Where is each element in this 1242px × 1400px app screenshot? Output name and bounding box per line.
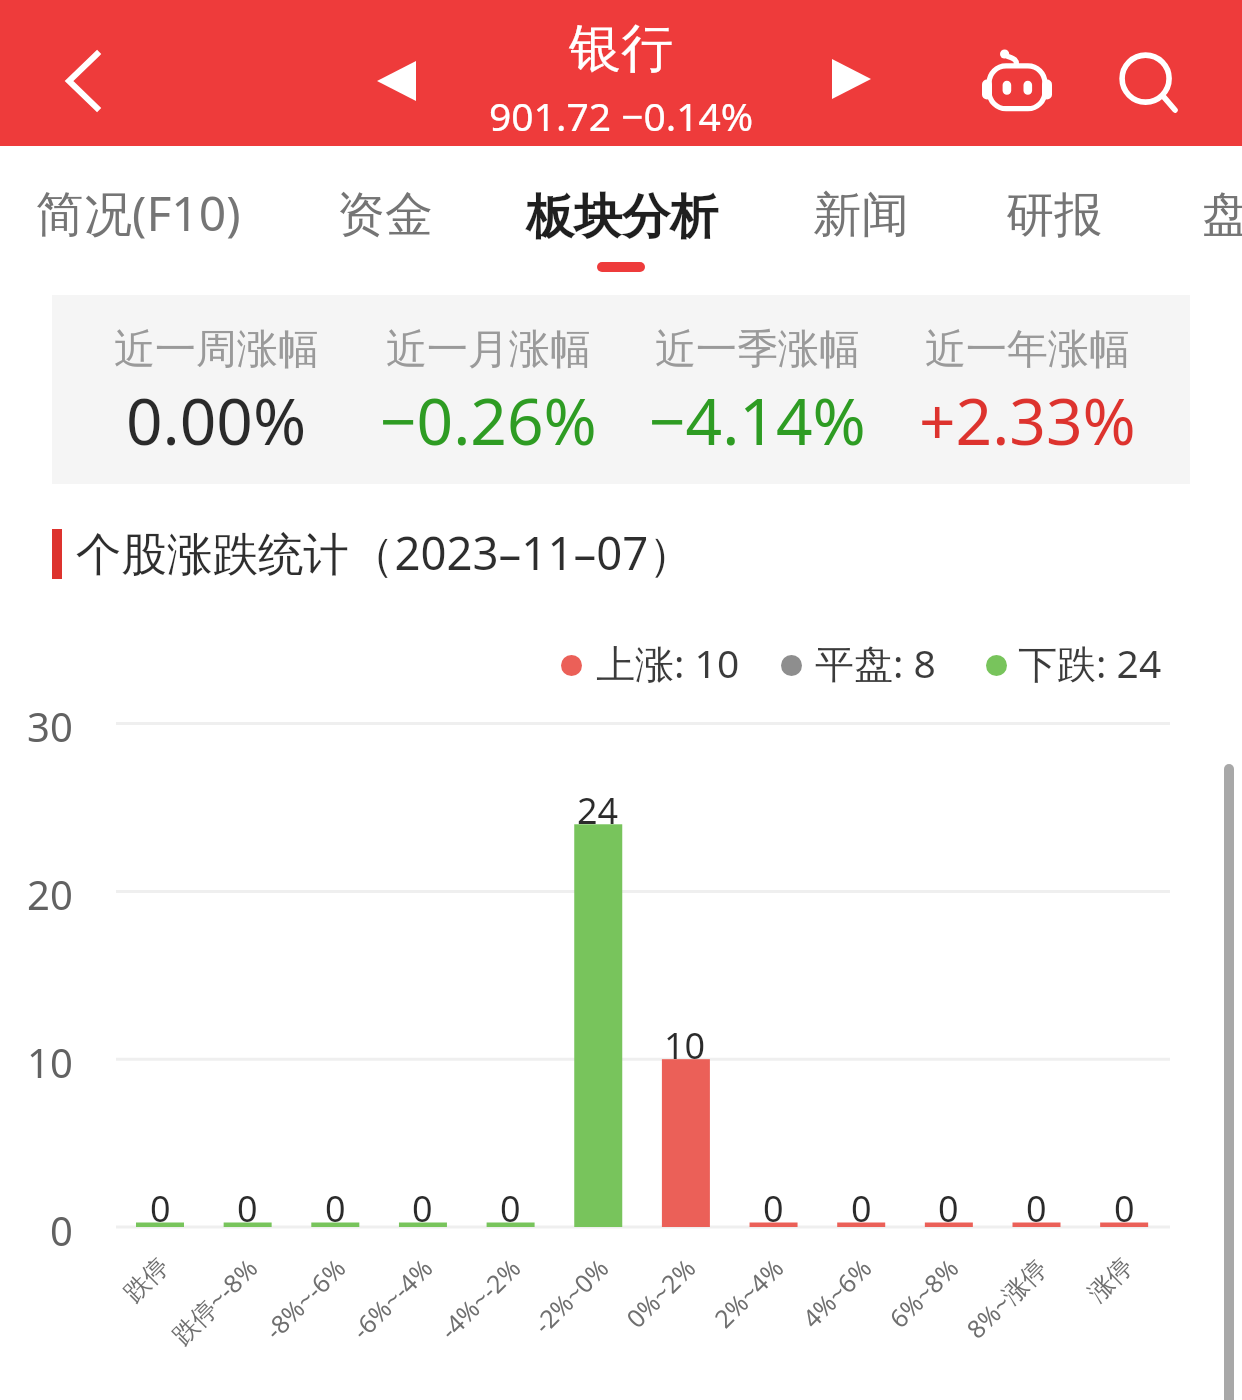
staticText: 0 bbox=[150, 1184, 171, 1222]
staticText: -6%~-4% bbox=[344, 1251, 439, 1346]
staticText: 板块分析 bbox=[526, 187, 718, 247]
staticText: −0.26% bbox=[380, 377, 597, 464]
staticText: 近一月涨幅 bbox=[386, 324, 591, 376]
staticText: 盘 bbox=[1202, 185, 1242, 245]
staticText: 0%~2% bbox=[618, 1251, 702, 1335]
staticText: 0 bbox=[1114, 1184, 1135, 1222]
staticText: 0 bbox=[412, 1184, 433, 1222]
button[interactable] bbox=[978, 641, 1170, 693]
staticText: -8%~-6% bbox=[257, 1251, 352, 1346]
staticText: 上涨: 10 bbox=[596, 636, 740, 689]
button[interactable]: Search bbox=[1100, 30, 1200, 130]
button[interactable]: 盘 bbox=[1184, 177, 1242, 253]
button[interactable]: 板块分析 bbox=[508, 179, 736, 255]
staticText: 跌停~-8% bbox=[164, 1251, 264, 1351]
button[interactable]: Back bbox=[33, 31, 133, 131]
staticText: 下跌: 24 bbox=[1018, 636, 1162, 689]
staticText: 10 bbox=[27, 1035, 73, 1089]
staticText: 4%~6% bbox=[794, 1251, 878, 1335]
staticText: 近一季涨幅 bbox=[655, 324, 860, 376]
button[interactable] bbox=[773, 641, 967, 693]
button[interactable]: 新闻 bbox=[795, 177, 927, 253]
button[interactable]: 近一年涨幅 bbox=[887, 295, 1167, 484]
staticText: -4%~-2% bbox=[432, 1251, 527, 1346]
staticText: 银行 bbox=[569, 16, 673, 82]
staticText: 0 bbox=[500, 1184, 521, 1222]
staticText: 901.72 −0.14% bbox=[489, 89, 754, 142]
staticText: 研报 bbox=[1006, 185, 1102, 245]
button[interactable]: AI assistant bbox=[967, 28, 1067, 133]
staticText: 10 bbox=[664, 1021, 706, 1059]
staticText: 简况(F10) bbox=[36, 180, 241, 246]
button[interactable] bbox=[553, 641, 748, 693]
staticText: 平盘: 8 bbox=[815, 636, 936, 689]
staticText: 0 bbox=[325, 1184, 346, 1222]
button[interactable]: Next sector bbox=[801, 29, 901, 129]
staticText: 个股涨跌统计（2023–11–07） bbox=[76, 521, 694, 583]
button[interactable]: 近一周涨幅 bbox=[76, 295, 356, 484]
staticText: 20 bbox=[27, 867, 73, 921]
staticText: 0 bbox=[1026, 1184, 1047, 1222]
staticText: 资金 bbox=[337, 185, 433, 245]
button[interactable]: 近一季涨幅 bbox=[617, 295, 897, 484]
staticText: -2%~0% bbox=[525, 1251, 615, 1341]
staticText: 2%~4% bbox=[706, 1251, 790, 1335]
button[interactable]: Previous sector bbox=[346, 31, 446, 131]
staticText: 0 bbox=[763, 1184, 784, 1222]
staticText: 8%~涨停 bbox=[958, 1251, 1053, 1346]
staticText: 30 bbox=[27, 699, 73, 753]
staticText: 近一年涨幅 bbox=[925, 324, 1130, 376]
button[interactable]: 近一月涨幅 bbox=[348, 295, 628, 484]
staticText: 6%~8% bbox=[881, 1251, 965, 1335]
staticText: 24 bbox=[577, 786, 619, 824]
staticText: 涨停 bbox=[1082, 1251, 1139, 1308]
button[interactable]: 简况(F10) bbox=[18, 172, 259, 254]
button[interactable]: 资金 bbox=[319, 177, 451, 253]
staticText: 0 bbox=[938, 1184, 959, 1222]
staticText: 0 bbox=[50, 1203, 73, 1257]
staticText: +2.33% bbox=[919, 377, 1136, 464]
button[interactable]: 研报 bbox=[988, 177, 1120, 253]
staticText: −4.14% bbox=[649, 377, 866, 464]
staticText: 跌停 bbox=[118, 1251, 175, 1308]
button[interactable]: 银行 bbox=[421, 16, 821, 132]
staticText: 近一周涨幅 bbox=[114, 324, 319, 376]
staticText: 0.00% bbox=[126, 377, 307, 464]
staticText: 新闻 bbox=[813, 185, 909, 245]
staticText: 0 bbox=[237, 1184, 258, 1222]
staticText: 0 bbox=[851, 1184, 872, 1222]
